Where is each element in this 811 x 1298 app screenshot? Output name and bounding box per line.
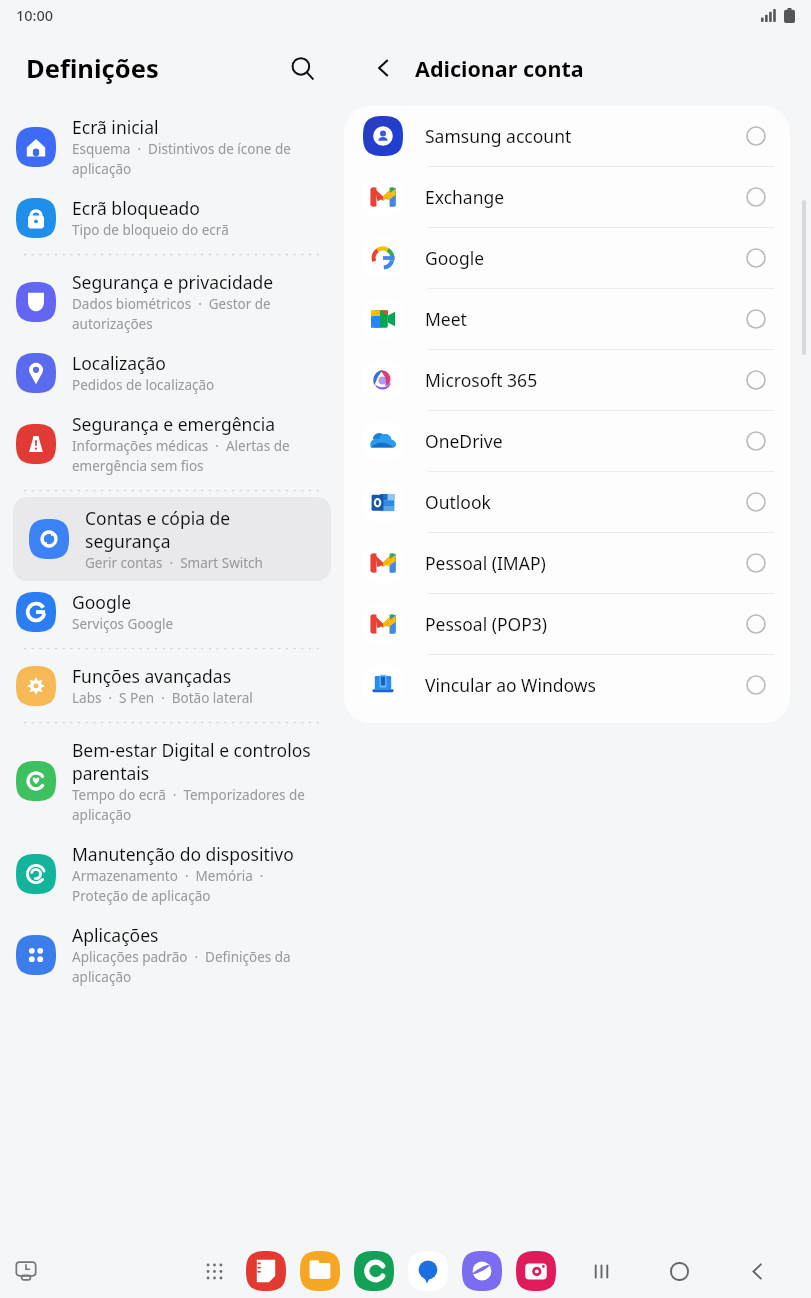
button[interactable]: All apps xyxy=(194,1251,234,1291)
button[interactable]: Pessoal (IMAP) xyxy=(344,533,790,593)
button[interactable]: Aplicações xyxy=(0,914,344,995)
staticText: Labs · S Pen · Botão lateral xyxy=(72,689,253,707)
staticText: Contas e cópia de segurança xyxy=(85,506,317,553)
button[interactable]: My Files xyxy=(299,1250,341,1292)
button[interactable]: Microsoft 365 xyxy=(344,350,790,410)
button[interactable]: Outlook xyxy=(344,472,790,532)
button[interactable]: Ecrã bloqueado xyxy=(0,187,344,248)
button[interactable]: Segurança e emergência xyxy=(0,403,344,484)
staticText: OneDrive xyxy=(425,429,746,453)
button[interactable]: Vincular ao Windows xyxy=(344,655,790,715)
button[interactable]: Manutenção do dispositivo xyxy=(0,833,344,914)
staticText: Exchange xyxy=(425,185,746,209)
button[interactable]: Funções avançadas xyxy=(0,655,344,716)
button[interactable]: Bem-estar Digital e controlos parentais xyxy=(0,729,344,833)
button[interactable]: Segurança e privacidade xyxy=(0,261,344,342)
staticText: Meet xyxy=(425,307,746,331)
staticText: Ecrã bloqueado xyxy=(72,196,200,220)
staticText: Esquema · Distintivos de ícone de aplica… xyxy=(72,140,291,178)
staticText: 10:00 xyxy=(16,5,54,25)
button[interactable]: Google xyxy=(344,228,790,288)
staticText: Manutenção do dispositivo xyxy=(72,842,294,866)
button[interactable]: Back xyxy=(362,46,406,90)
button[interactable]: Camera xyxy=(515,1250,557,1292)
button[interactable]: Pessoal (POP3) xyxy=(344,594,790,654)
button[interactable]: Recents xyxy=(577,1247,625,1295)
button[interactable]: Back xyxy=(733,1247,781,1295)
button[interactable]: Contas e cópia de segurança xyxy=(13,497,331,581)
staticText: Pedidos de localização xyxy=(72,376,215,394)
button[interactable]: Desktop mode xyxy=(6,1251,46,1291)
button[interactable]: Internet xyxy=(461,1250,503,1292)
staticText: Aplicações padrão · Definições da aplica… xyxy=(72,948,291,986)
button[interactable]: Meet xyxy=(344,289,790,349)
button[interactable]: OneDrive xyxy=(344,411,790,471)
staticText: Tempo do ecrã · Temporizadores de aplica… xyxy=(72,786,305,824)
staticText: Pessoal (IMAP) xyxy=(425,551,746,575)
staticText: Adicionar conta xyxy=(415,54,584,83)
staticText: Segurança e privacidade xyxy=(72,270,274,294)
staticText: Vincular ao Windows xyxy=(425,673,746,697)
button[interactable]: Home xyxy=(655,1247,703,1295)
staticText: Informações médicas · Alertas de emergên… xyxy=(72,437,290,475)
button[interactable]: Phone xyxy=(353,1250,395,1292)
staticText: Serviços Google xyxy=(72,615,174,633)
staticText: Definições xyxy=(26,51,282,86)
button[interactable]: Search xyxy=(282,48,322,88)
button[interactable]: Messages xyxy=(407,1250,449,1292)
staticText: Segurança e emergência xyxy=(72,412,276,436)
staticText: Ecrã inicial xyxy=(72,115,159,139)
staticText: Outlook xyxy=(425,490,746,514)
staticText: Google xyxy=(72,590,132,614)
staticText: Samsung account xyxy=(425,124,746,148)
staticText: Funções avançadas xyxy=(72,664,232,688)
button[interactable]: Samsung account xyxy=(344,106,790,166)
staticText: Gerir contas · Smart Switch xyxy=(85,554,263,572)
button[interactable]: Samsung Notes xyxy=(245,1250,287,1292)
staticText: Armazenamento · Memória · Proteção de ap… xyxy=(72,867,264,905)
button[interactable]: Ecrã inicial xyxy=(0,106,344,187)
staticText: Pessoal (POP3) xyxy=(425,612,746,636)
staticText: Bem-estar Digital e controlos parentais xyxy=(72,738,311,785)
button[interactable]: Exchange xyxy=(344,167,790,227)
staticText: Aplicações xyxy=(72,923,159,947)
staticText: Google xyxy=(425,246,746,270)
staticText: Microsoft 365 xyxy=(425,368,746,392)
staticText: Localização xyxy=(72,351,166,375)
staticText: Tipo de bloqueio do ecrã xyxy=(72,221,229,239)
button[interactable]: Google xyxy=(0,581,344,642)
staticText: Dados biométricos · Gestor de autorizaçõ… xyxy=(72,295,271,333)
button[interactable]: Localização xyxy=(0,342,344,403)
